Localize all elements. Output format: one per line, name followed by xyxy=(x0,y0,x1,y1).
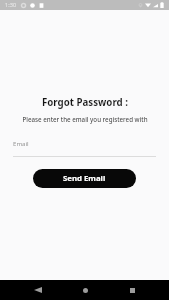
button[interactable]: Email xyxy=(13,139,156,157)
button[interactable]: Home xyxy=(71,280,99,300)
button[interactable]: Back xyxy=(24,280,52,300)
staticText: Email xyxy=(13,139,29,147)
button[interactable]: Recent apps xyxy=(118,280,146,300)
button[interactable]: Send Email xyxy=(33,169,136,188)
staticText: Forgot Password : xyxy=(42,96,128,109)
staticText: 1:30 xyxy=(5,1,17,9)
staticText: Please enter the email you registered wi… xyxy=(22,115,148,123)
staticText: Send Email xyxy=(63,173,106,184)
